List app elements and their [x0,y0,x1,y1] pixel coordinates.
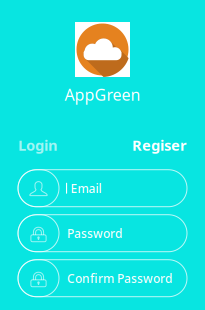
staticText: Password [67,225,122,241]
staticText: Email [71,180,102,196]
button[interactable]: Login [18,135,58,155]
button[interactable]: Password [18,215,187,252]
button[interactable]: Confirm Password [18,260,187,297]
staticText: Login [18,135,58,155]
button[interactable]: Regiser [132,135,187,155]
staticText: AppGreen [64,84,140,105]
button[interactable]: Email [18,170,187,207]
staticText: Regiser [132,135,187,155]
staticText: Confirm Password [67,270,172,286]
